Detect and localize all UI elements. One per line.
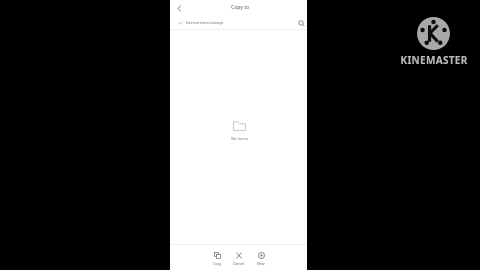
- staticText: Cancel: [233, 261, 245, 266]
- staticText: Copy to: [231, 4, 250, 11]
- button[interactable]: Cancel: [228, 249, 250, 269]
- button[interactable]: Internal shared storage: [174, 15, 228, 30]
- staticText: Internal shared storage: [186, 20, 224, 25]
- button[interactable]: Search: [296, 18, 307, 29]
- button[interactable]: New: [250, 249, 272, 269]
- staticText: Copy: [213, 261, 222, 266]
- staticText: New: [257, 261, 265, 266]
- staticText: No items: [231, 136, 248, 141]
- staticText: KINEMASTER: [400, 53, 468, 67]
- button[interactable]: Back: [172, 1, 186, 15]
- button[interactable]: Copy: [206, 249, 228, 269]
